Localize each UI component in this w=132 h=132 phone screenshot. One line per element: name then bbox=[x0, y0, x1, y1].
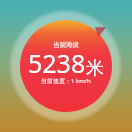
staticText: 米 bbox=[86, 57, 104, 80]
staticText: 当前速度：1 km/h bbox=[41, 77, 91, 85]
staticText: 当前海拔 bbox=[53, 41, 79, 49]
staticText: 5238 bbox=[28, 46, 86, 80]
button[interactable]: 当前海拔 bbox=[20, 20, 112, 112]
